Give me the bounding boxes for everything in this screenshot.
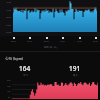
staticText: 191	[69, 64, 81, 73]
staticText: 16:00	[77, 40, 82, 43]
staticText: 心拍 (bpm)	[5, 56, 24, 61]
staticText: 00:00	[11, 40, 16, 43]
staticText: 08:00	[6, 16, 12, 19]
staticText: 164	[19, 64, 31, 73]
staticText: 最大	[73, 74, 78, 77]
staticText: 16:00	[6, 1, 12, 4]
staticText: 100	[7, 90, 11, 93]
button[interactable]: 164	[0, 64, 50, 77]
staticText: 時間 (時 : 分)	[44, 46, 57, 49]
staticText: 12:00	[60, 40, 65, 43]
staticText: 00:00	[6, 31, 12, 34]
other: Heart rate chart	[0, 79, 100, 100]
staticText: 04:00	[6, 24, 12, 27]
button[interactable]: 191	[50, 64, 100, 77]
staticText: 平均	[23, 74, 28, 77]
staticText: 150	[7, 85, 11, 88]
staticText: 12:00	[6, 9, 12, 12]
button[interactable]: 心拍 (bpm)	[0, 55, 100, 62]
staticText: 20:00	[93, 40, 98, 43]
staticText: 200	[7, 79, 11, 82]
staticText: 50	[8, 96, 11, 99]
staticText: 04:00	[27, 40, 32, 43]
staticText: 08:00	[44, 40, 49, 43]
